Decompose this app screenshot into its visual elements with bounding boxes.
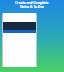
staticText: Create and Complete Notes & To-Dos bbox=[0, 1, 64, 9]
